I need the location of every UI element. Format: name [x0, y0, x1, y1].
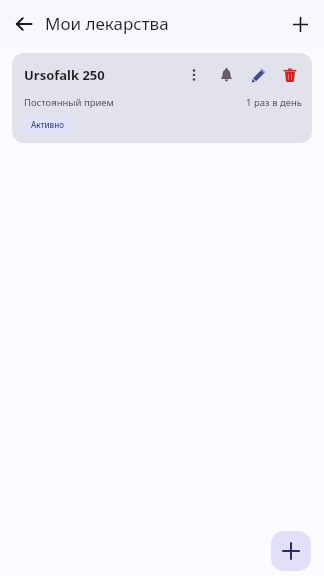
- staticText: Мои лекарства: [45, 12, 169, 35]
- button[interactable]: Reminder: [214, 63, 238, 87]
- staticText: Ursofalk 250: [24, 66, 105, 84]
- button[interactable]: Edit: [246, 63, 270, 87]
- button[interactable]: Delete: [278, 63, 302, 87]
- button[interactable]: Активно: [24, 116, 71, 133]
- staticText: Постоянный прием: [24, 96, 114, 109]
- staticText: 1 раз в день: [246, 96, 302, 109]
- button[interactable]: Ursofalk 250: [12, 53, 312, 143]
- staticText: Активно: [31, 119, 64, 130]
- button[interactable]: More options: [182, 63, 206, 87]
- button[interactable]: Add: [271, 531, 311, 571]
- button[interactable]: Back: [7, 7, 41, 41]
- button[interactable]: Add medication: [284, 8, 316, 40]
